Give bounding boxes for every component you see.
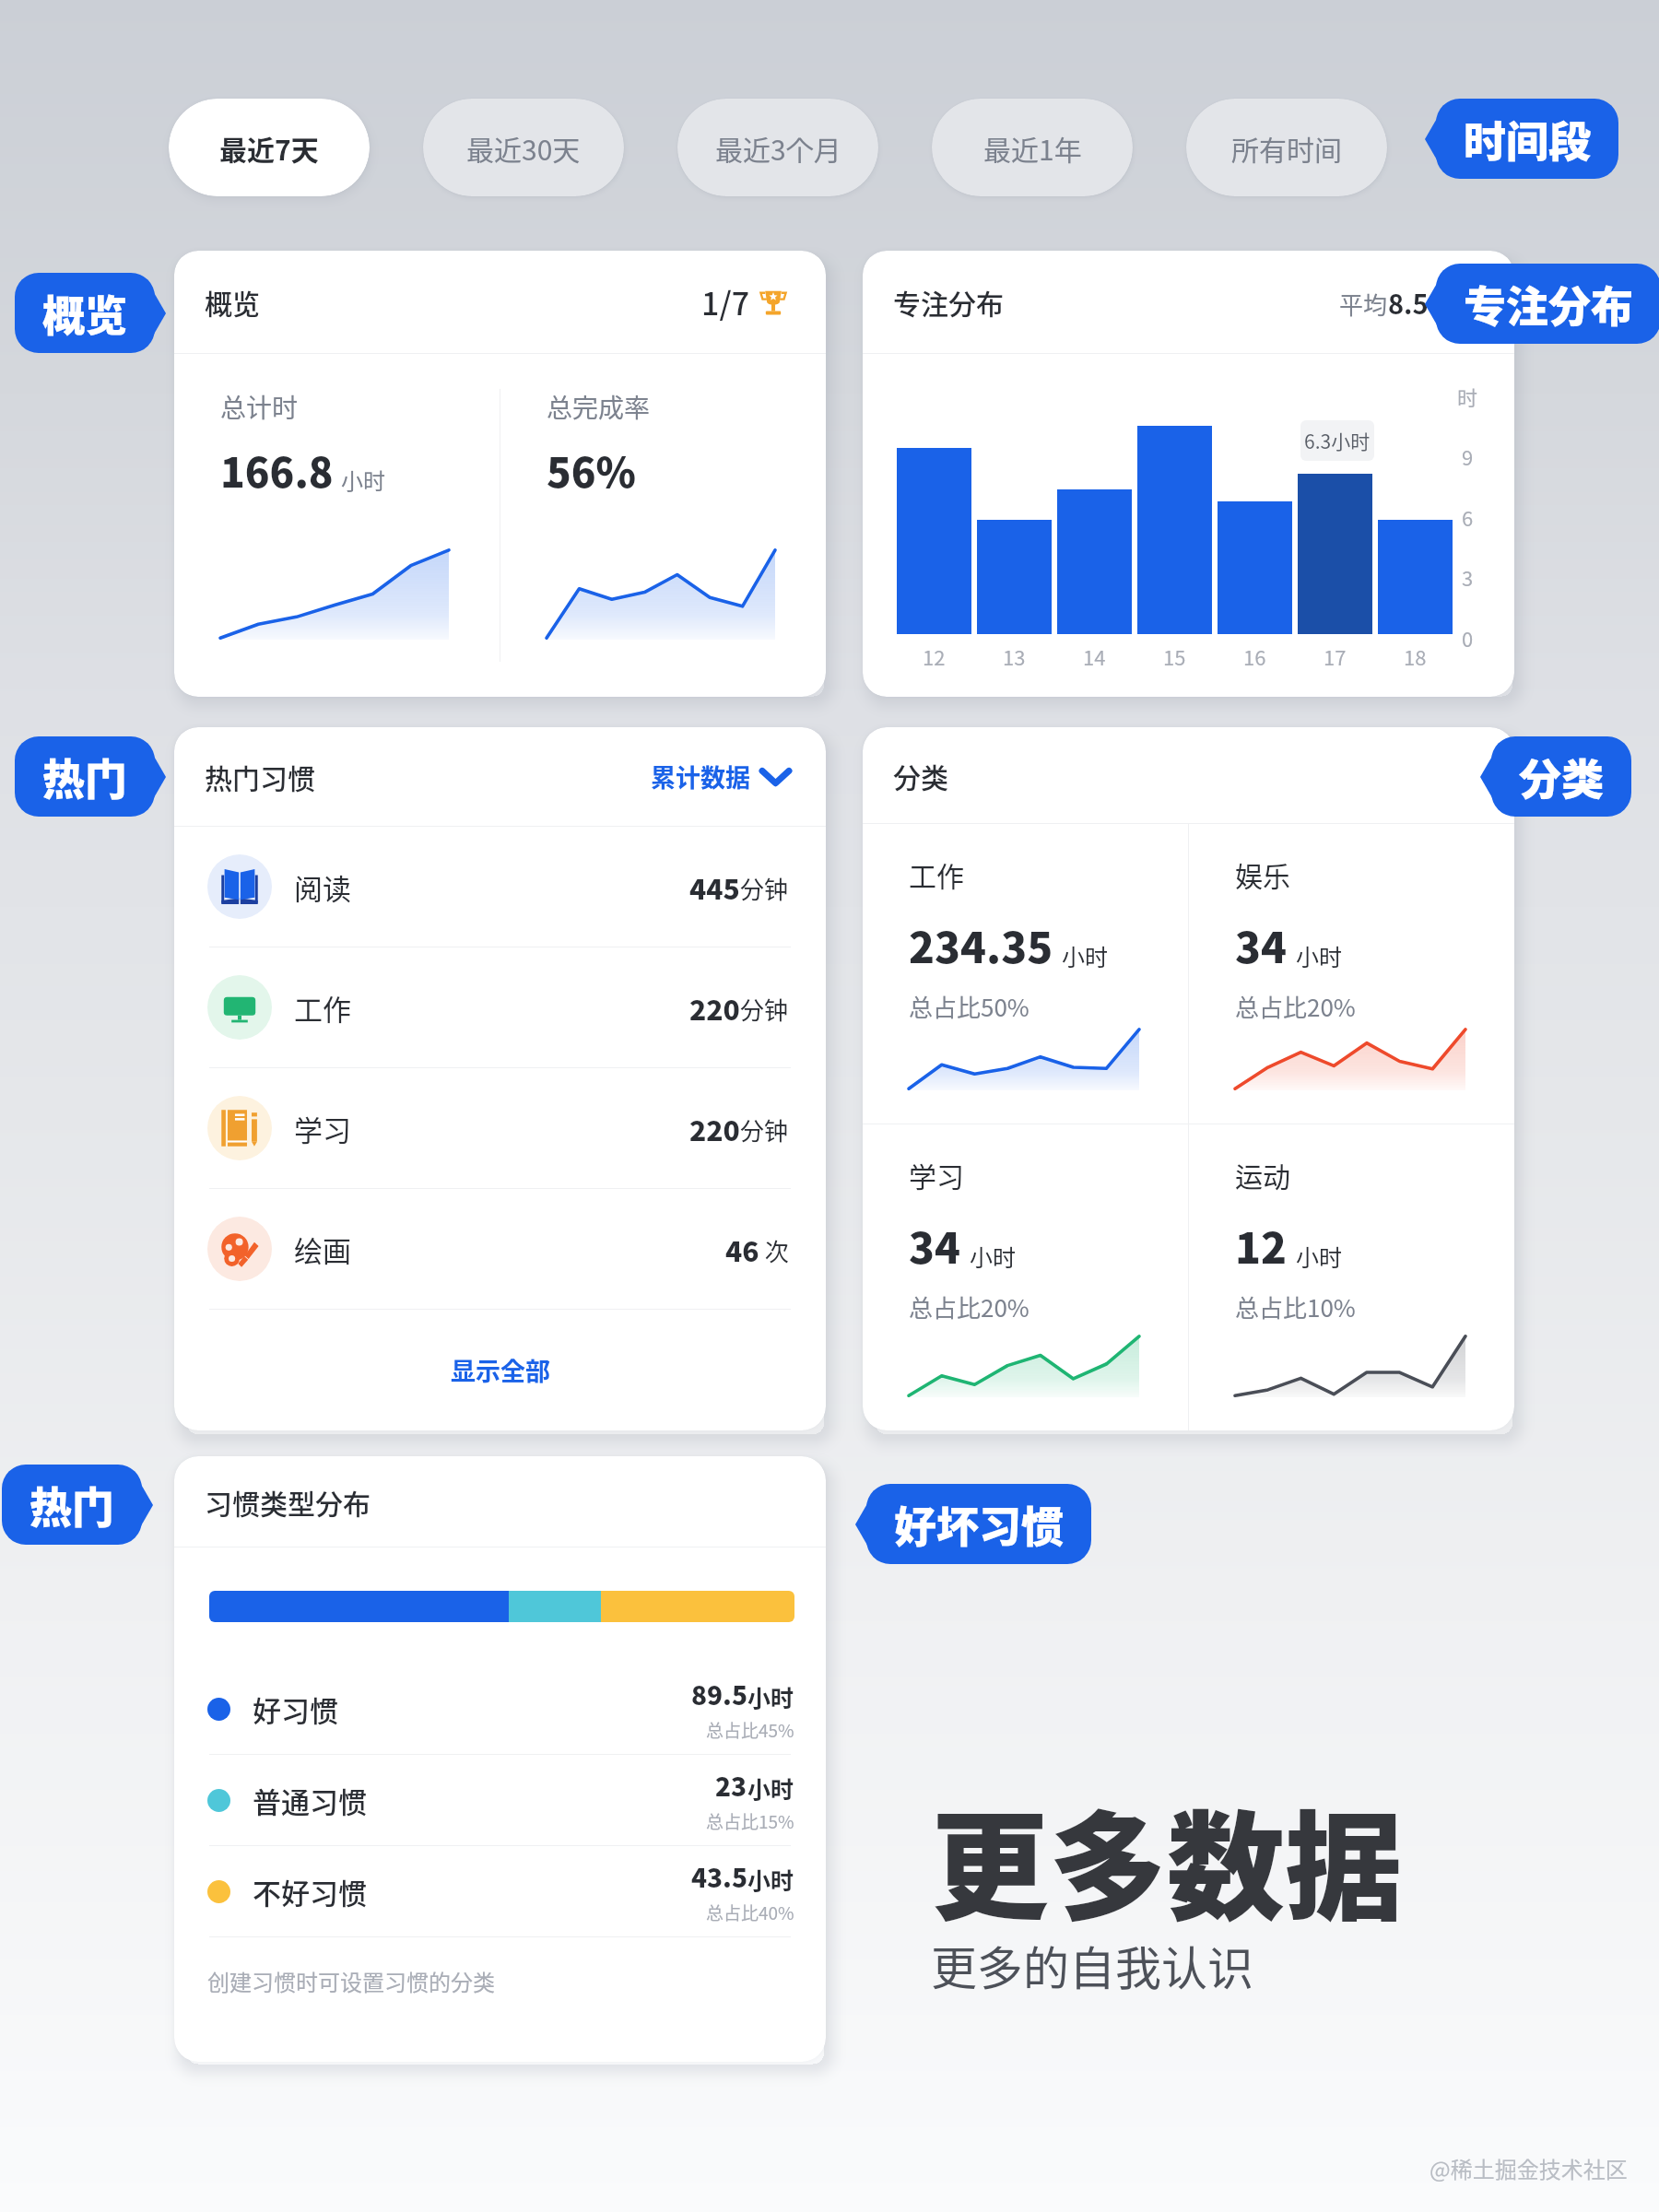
button[interactable]: 最近7天 <box>169 99 370 196</box>
button[interactable]: 不好习惯 <box>174 1846 826 1936</box>
button[interactable]: 运动 <box>1189 1124 1514 1430</box>
staticText: 46 <box>725 1230 759 1269</box>
button[interactable]: 最近30天 <box>423 99 624 196</box>
button[interactable]: 热门 <box>2 1465 142 1545</box>
staticText: 445 <box>689 867 740 907</box>
button[interactable]: 时间段 <box>1436 99 1618 179</box>
staticText: 时 <box>1457 382 1478 411</box>
button[interactable]: 学习 <box>174 1068 826 1188</box>
staticText: 23 <box>715 1767 747 1805</box>
staticText: 分类 <box>893 756 948 795</box>
button[interactable]: 专注分布 <box>1436 264 1659 344</box>
staticText: 15 <box>1163 641 1186 671</box>
staticText: 总占比45% <box>706 1717 794 1743</box>
staticText: 分钟 <box>740 871 789 906</box>
button[interactable]: 概览 <box>15 273 155 353</box>
staticText: 6.3小时 <box>1304 427 1371 454</box>
staticText: 所有时间 <box>1231 128 1342 168</box>
staticText: 6 <box>1462 502 1474 532</box>
staticText: 9 <box>1462 441 1474 471</box>
staticText: 166.8 <box>220 441 334 500</box>
staticText: 总占比15% <box>706 1808 794 1834</box>
staticText: 小时 <box>341 464 385 496</box>
button[interactable]: 所有时间 <box>1186 99 1387 196</box>
button[interactable]: 显示全部 <box>174 1310 826 1430</box>
button[interactable]: 绘画 <box>174 1189 826 1309</box>
button[interactable]: 学习 <box>863 1124 1188 1430</box>
staticText: 小时 <box>747 1771 794 1805</box>
staticText: 专注分布 <box>1464 273 1633 335</box>
staticText: 16 <box>1243 641 1266 671</box>
staticText: 总完成率 <box>547 388 651 426</box>
staticText: 平均 <box>1339 287 1388 322</box>
staticText: 总占比40% <box>706 1900 794 1925</box>
staticText: 好坏习惯 <box>894 1493 1064 1555</box>
staticText: 不好习惯 <box>253 1871 367 1912</box>
staticText: 创建习惯时可设置习惯的分类 <box>207 1965 495 1997</box>
staticText: 总占比20% <box>1235 989 1356 1024</box>
button[interactable]: 累计数据 <box>651 759 789 794</box>
staticText: 工作 <box>909 854 964 894</box>
staticText: 总占比10% <box>1235 1289 1356 1324</box>
staticText: 最近30天 <box>466 128 581 168</box>
button[interactable]: 分类 <box>1491 736 1631 817</box>
staticText: 热门 <box>42 746 127 807</box>
staticText: 学习 <box>294 1108 351 1149</box>
staticText: 更多的自我认识 <box>931 1932 1253 1998</box>
button[interactable]: 工作 <box>863 824 1188 1124</box>
staticText: 43.5 <box>691 1858 747 1896</box>
button[interactable]: 热门 <box>15 736 155 817</box>
staticText: 3 <box>1462 562 1474 592</box>
staticText: 1/7 <box>701 279 750 324</box>
staticText: 小时 <box>747 1680 794 1713</box>
staticText: 12 <box>923 641 946 671</box>
staticText: 小时 <box>970 1240 1017 1273</box>
staticText: 热门习惯 <box>205 757 315 796</box>
staticText: 阅读 <box>294 866 351 908</box>
button[interactable]: 好习惯 <box>174 1664 826 1754</box>
staticText: 小时 <box>747 1863 794 1896</box>
button[interactable]: 最近3个月 <box>677 99 878 196</box>
button[interactable]: 普通习惯 <box>174 1755 826 1845</box>
staticText: 概览 <box>42 282 127 344</box>
staticText: 累计数据 <box>651 759 750 794</box>
staticText: 34 <box>1235 914 1288 976</box>
staticText: 普通习惯 <box>253 1780 367 1821</box>
staticText: 220 <box>689 988 740 1028</box>
staticText: 最近1年 <box>983 128 1082 168</box>
staticText: 显示全部 <box>451 1352 550 1388</box>
button[interactable]: 娱乐 <box>1189 824 1514 1124</box>
staticText: 8.5 <box>1388 283 1429 322</box>
staticText: 56% <box>547 441 636 500</box>
staticText: 热门 <box>29 1474 114 1535</box>
staticText: 14 <box>1083 641 1106 671</box>
staticText: 小时 <box>1062 939 1109 972</box>
staticText: 好习惯 <box>253 1688 338 1730</box>
button[interactable]: 最近1年 <box>932 99 1133 196</box>
staticText: 总计时 <box>220 388 299 426</box>
staticText: 220 <box>689 1109 740 1148</box>
staticText: 娱乐 <box>1235 854 1290 894</box>
staticText: 小时 <box>1429 287 1477 322</box>
button[interactable]: 阅读 <box>174 827 826 947</box>
staticText: 13 <box>1003 641 1026 671</box>
staticText: 小时 <box>1296 1240 1343 1273</box>
staticText: 最近3个月 <box>715 128 841 168</box>
staticText: 12 <box>1235 1215 1288 1277</box>
staticText: 34 <box>909 1215 961 1277</box>
staticText: 工作 <box>294 987 351 1029</box>
staticText: 学习 <box>909 1155 964 1194</box>
staticText: 总占比20% <box>909 1289 1030 1324</box>
other: Trophy <box>758 287 789 318</box>
staticText: 运动 <box>1235 1155 1290 1194</box>
staticText: 0 <box>1462 623 1474 653</box>
button[interactable]: 好坏习惯 <box>866 1484 1091 1564</box>
staticText: 89.5 <box>691 1676 747 1713</box>
staticText: 分钟 <box>740 992 789 1027</box>
staticText: 分钟 <box>740 1112 789 1147</box>
button[interactable]: 工作 <box>174 947 826 1067</box>
staticText: 绘画 <box>294 1229 351 1270</box>
staticText: @稀土掘金技术社区 <box>1430 2152 1628 2184</box>
staticText: 分类 <box>1519 746 1604 807</box>
staticText: 更多数据 <box>931 1774 1404 1945</box>
